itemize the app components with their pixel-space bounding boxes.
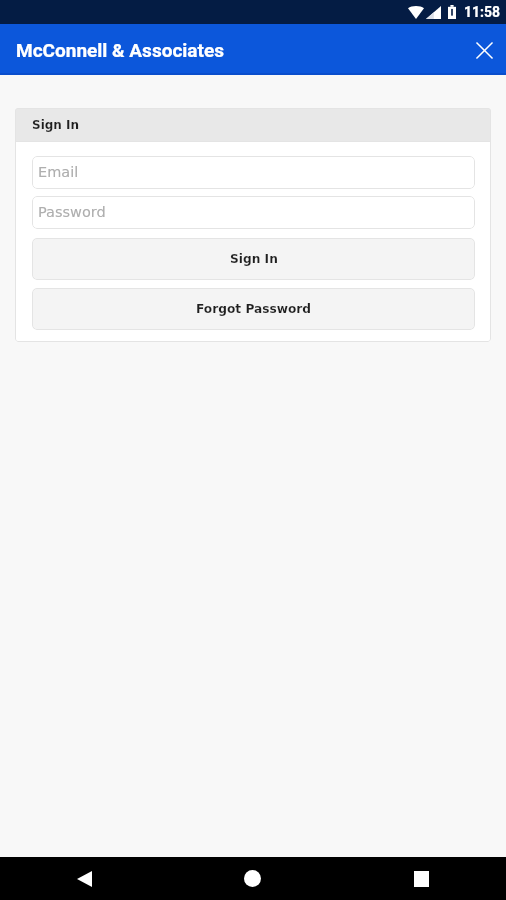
button[interactable]: Close xyxy=(464,30,504,70)
button[interactable]: Email xyxy=(32,156,475,189)
button[interactable]: Forgot Password xyxy=(32,288,475,330)
staticText: McConnell & Associates xyxy=(16,39,225,61)
button[interactable]: Password xyxy=(32,196,475,229)
button[interactable]: Sign In xyxy=(32,238,475,280)
staticText: Sign In xyxy=(32,118,80,132)
staticText: Sign In xyxy=(230,252,278,266)
button[interactable]: Recents xyxy=(337,857,506,900)
staticText: Email xyxy=(38,164,79,181)
staticText: Forgot Password xyxy=(196,302,312,316)
staticText: 11:58 xyxy=(464,4,501,20)
staticText: Password xyxy=(38,204,106,221)
button[interactable]: Back xyxy=(0,857,168,900)
button[interactable]: Home xyxy=(168,857,337,900)
